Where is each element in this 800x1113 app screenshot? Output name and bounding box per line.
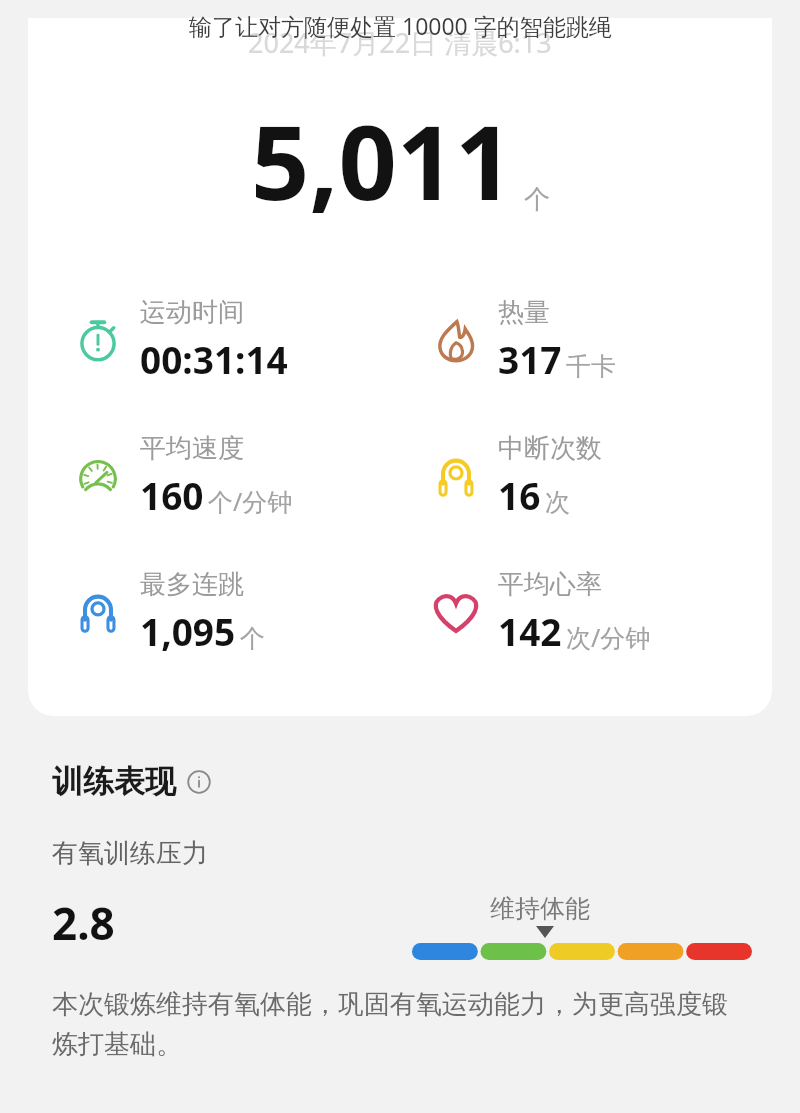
staticText: 16 — [498, 470, 541, 520]
staticText: 317 — [498, 334, 562, 384]
staticText: 个 — [240, 623, 265, 654]
staticText: 个/分钟 — [208, 484, 293, 518]
staticText: 中断次数 — [498, 432, 602, 465]
button[interactable]: 最多连跳 — [70, 568, 400, 656]
staticText: 运动时间 — [140, 296, 244, 329]
staticText: 训练表现 — [52, 762, 176, 801]
staticText: 2.8 — [52, 893, 115, 953]
button[interactable]: 运动时间 — [70, 296, 400, 384]
staticText: 平均心率 — [498, 568, 602, 601]
staticText: 1,095 — [140, 606, 236, 656]
button[interactable]: 平均速度 — [70, 432, 400, 520]
staticText: 最多连跳 — [140, 568, 244, 601]
staticText: 维持体能 — [490, 893, 590, 924]
staticText: 平均速度 — [140, 432, 244, 465]
button[interactable]: 热量 — [428, 296, 772, 384]
button[interactable]: 训练表现 — [52, 762, 211, 801]
staticText: 本次锻炼维持有氧体能，巩固有氧运动能力，为更高强度锻炼打基础。 — [52, 988, 750, 1061]
staticText: 00:31:14 — [140, 334, 288, 384]
staticText: 次 — [545, 487, 570, 518]
staticText: 142 — [498, 606, 562, 656]
staticText: 有氧训练压力 — [52, 837, 208, 870]
staticText: 热量 — [498, 296, 550, 329]
other: Info — [187, 770, 211, 794]
button[interactable]: 中断次数 — [428, 432, 772, 520]
staticText: 5,011 — [251, 91, 514, 230]
staticText: 个 — [524, 183, 550, 216]
staticText: 输了让对方随便处置 10000 字的智能跳绳 — [189, 10, 612, 41]
staticText: 次/分钟 — [566, 620, 651, 654]
staticText: 160 — [140, 470, 204, 520]
button[interactable]: 平均心率 — [428, 568, 772, 656]
staticText: 千卡 — [566, 351, 616, 382]
staticText: 2024年7月22日 清晨6:13 — [248, 24, 552, 61]
